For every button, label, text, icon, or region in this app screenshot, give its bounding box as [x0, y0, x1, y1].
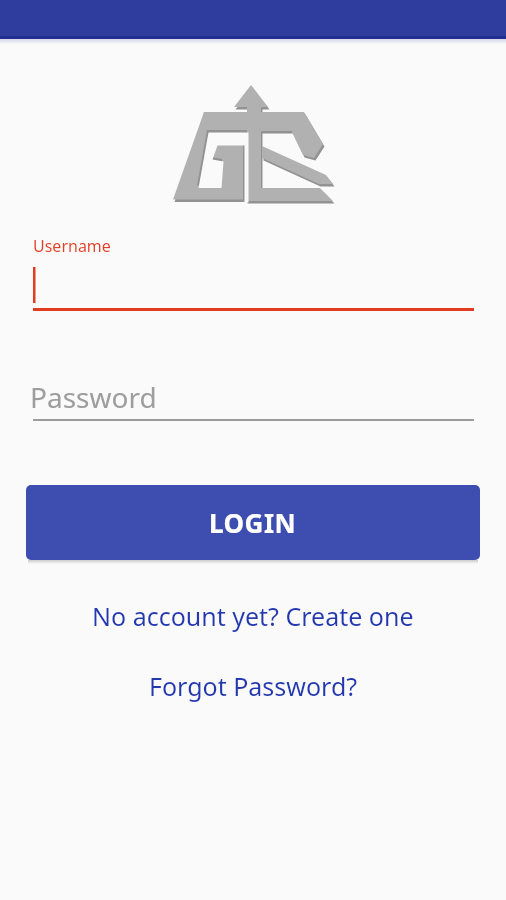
button[interactable]	[33, 370, 474, 422]
staticText: LOGIN	[209, 505, 297, 540]
staticText: No account yet? Create one	[92, 599, 414, 633]
button[interactable]: No account yet? Create one	[0, 599, 506, 633]
staticText: Forgot Password?	[149, 669, 358, 703]
button[interactable]: Forgot Password?	[0, 669, 506, 703]
button[interactable]: LOGIN	[26, 485, 480, 560]
staticText: Username	[33, 235, 111, 257]
button[interactable]	[33, 255, 474, 311]
staticText: Password	[30, 378, 157, 416]
